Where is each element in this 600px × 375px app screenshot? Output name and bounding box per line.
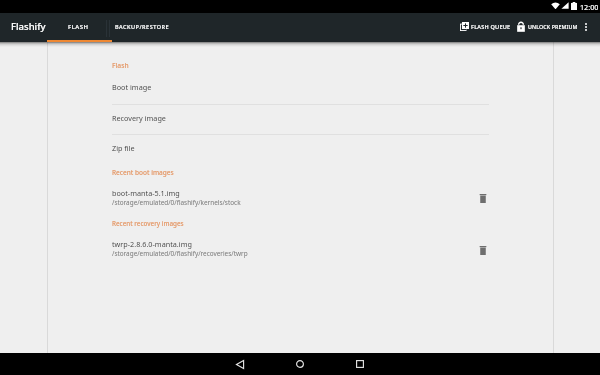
staticText: Recent boot images — [112, 168, 174, 177]
staticText: Flashify — [11, 20, 46, 33]
button[interactable]: Zip file — [48, 134, 553, 164]
staticText: Recovery image — [112, 113, 166, 123]
button[interactable]: Delete — [473, 240, 493, 260]
button[interactable]: FLASH QUEUE — [456, 12, 515, 41]
button[interactable]: Delete — [473, 188, 493, 208]
button[interactable]: FLASH — [49, 12, 108, 41]
staticText: FLASH — [68, 23, 89, 31]
staticText: Recent recovery images — [112, 219, 184, 228]
staticText: /storage/emulated/0/flashify/recoveries/… — [112, 249, 248, 258]
staticText: UNLOCK PREMIUM — [528, 23, 578, 30]
button[interactable]: Recovery image — [48, 104, 553, 134]
button[interactable]: Back — [217, 353, 263, 375]
button[interactable]: Home — [277, 353, 323, 375]
staticText: Zip file — [112, 143, 135, 153]
staticText: FLASH QUEUE — [471, 23, 511, 31]
button[interactable]: More options — [578, 12, 594, 41]
button[interactable]: Boot image — [48, 74, 553, 104]
staticText: BACKUP/RESTORE — [115, 23, 169, 30]
button[interactable]: boot-manta-5.1.img — [48, 184, 553, 212]
staticText: boot-manta-5.1.img — [112, 188, 180, 198]
button[interactable]: BACKUP/RESTORE — [110, 12, 173, 41]
staticText: /storage/emulated/0/flashify/kernels/sto… — [112, 198, 241, 207]
staticText: Flash — [112, 61, 129, 70]
button[interactable]: Recent apps — [337, 353, 383, 375]
button[interactable]: UNLOCK PREMIUM — [513, 12, 582, 41]
button[interactable]: twrp-2.8.6.0-manta.img — [48, 236, 553, 264]
staticText: 12:00 — [580, 2, 599, 12]
staticText: Boot image — [112, 82, 152, 92]
staticText: twrp-2.8.6.0-manta.img — [112, 239, 192, 249]
